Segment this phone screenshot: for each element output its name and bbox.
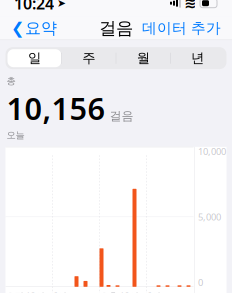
button[interactable]: 일: [7, 49, 61, 67]
staticText: 년: [191, 50, 204, 66]
staticText: 데이터 추가: [142, 19, 221, 37]
staticText: 걸음: [99, 17, 133, 39]
staticText: 요약: [25, 18, 57, 38]
button[interactable]: 주: [62, 49, 116, 67]
staticText: 5,000: [198, 211, 221, 223]
staticText: 오늘: [6, 129, 24, 141]
staticText: 6시: [146, 290, 160, 293]
staticText: 일: [28, 50, 41, 66]
button[interactable]: ❮: [3, 13, 65, 43]
staticText: 6시: [52, 290, 66, 293]
staticText: ❮: [11, 19, 24, 37]
staticText: 걸음: [109, 108, 133, 123]
staticText: 월: [137, 50, 150, 66]
staticText: 10:24: [14, 0, 54, 14]
staticText: ➤: [57, 0, 66, 9]
staticText: 10,156: [6, 88, 105, 128]
staticText: 0: [198, 276, 203, 288]
staticText: ≋: [184, 0, 196, 12]
staticText: 총: [6, 75, 15, 87]
staticText: 10,000: [198, 145, 226, 157]
staticText: 주: [82, 50, 95, 66]
staticText: 오전 12시: [5, 290, 44, 293]
button[interactable]: 데이터 추가: [134, 14, 229, 42]
button[interactable]: 년: [171, 49, 224, 67]
button[interactable]: 월: [116, 49, 170, 67]
staticText: 오후 12시: [99, 290, 138, 293]
